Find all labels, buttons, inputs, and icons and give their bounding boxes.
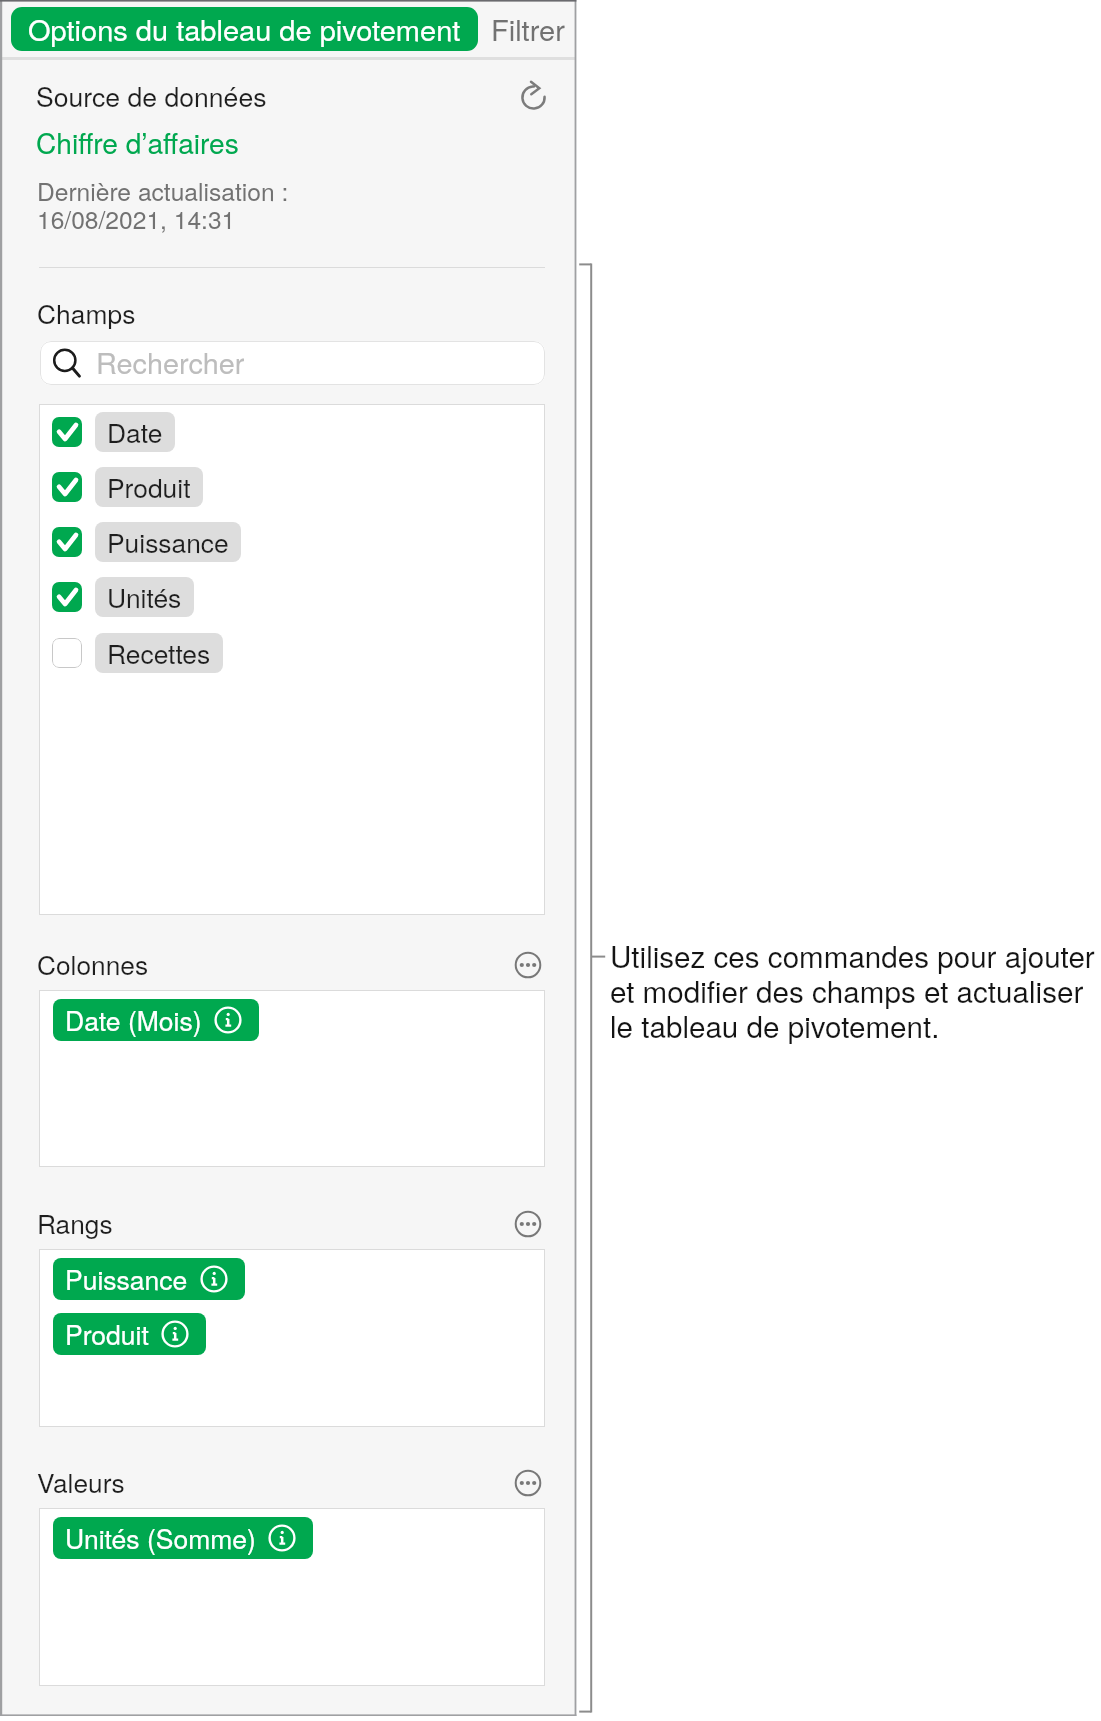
staticText: Valeurs bbox=[37, 1463, 125, 1501]
button[interactable]: Unités bbox=[39, 573, 545, 621]
staticText: Colonnes bbox=[37, 945, 149, 983]
button[interactable]: Produit bbox=[53, 1313, 206, 1355]
staticText: Dernière actualisation : 16/08/2021, 14:… bbox=[37, 173, 289, 236]
staticText: Unités (Somme) bbox=[65, 1519, 256, 1557]
staticText: Unités bbox=[107, 578, 182, 616]
staticText: Utilisez ces commandes pour ajouter et m… bbox=[610, 934, 1095, 1046]
staticText: Source de données bbox=[36, 76, 267, 114]
staticText: Produit bbox=[107, 468, 191, 506]
button[interactable]: Plus d’options bbox=[513, 950, 543, 980]
staticText: Date bbox=[107, 413, 163, 451]
staticText: Produit bbox=[65, 1315, 149, 1353]
button[interactable]: Filtrer bbox=[486, 7, 570, 51]
staticText: Champs bbox=[37, 294, 136, 332]
button[interactable]: Puissance bbox=[53, 1258, 245, 1300]
staticText: Options du tableau de pivotement bbox=[28, 8, 461, 50]
button[interactable]: Unités (Somme) bbox=[53, 1517, 313, 1559]
button[interactable]: Options du tableau de pivotement bbox=[11, 7, 478, 51]
button[interactable]: Date (Mois) bbox=[53, 999, 259, 1041]
button[interactable]: Plus d’options bbox=[513, 1209, 543, 1239]
button[interactable]: Date bbox=[39, 408, 545, 456]
staticText: Rangs bbox=[37, 1204, 113, 1242]
button[interactable]: Produit bbox=[39, 463, 545, 511]
staticText: Puissance bbox=[65, 1260, 188, 1298]
button[interactable]: Plus d’options bbox=[513, 1468, 543, 1498]
button[interactable]: Actualiser bbox=[516, 79, 554, 117]
button[interactable]: Rechercher bbox=[40, 341, 545, 385]
button[interactable]: Recettes bbox=[39, 629, 545, 677]
staticText: Recettes bbox=[107, 634, 211, 672]
staticText: Puissance bbox=[107, 523, 229, 561]
staticText: Date (Mois) bbox=[65, 1001, 202, 1039]
staticText: Filtrer bbox=[491, 8, 565, 50]
staticText: Chiffre d’affaires bbox=[36, 122, 239, 162]
button[interactable]: Puissance bbox=[39, 518, 545, 566]
staticText: Rechercher bbox=[96, 341, 245, 382]
